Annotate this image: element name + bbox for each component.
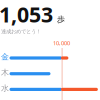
button[interactable]: 木 bbox=[0, 0, 100, 100]
staticText: 木 bbox=[1, 68, 9, 77]
staticText: 達成おめでとう！ bbox=[1, 28, 41, 35]
staticText: 歩 bbox=[57, 14, 65, 24]
staticText: 金 bbox=[1, 52, 9, 62]
button[interactable]: 金 bbox=[0, 0, 100, 100]
staticText: 水 bbox=[1, 83, 9, 93]
staticText: 10,000 bbox=[53, 39, 70, 47]
staticText: 1,053 bbox=[0, 0, 53, 28]
button[interactable]: 水 bbox=[0, 0, 100, 100]
